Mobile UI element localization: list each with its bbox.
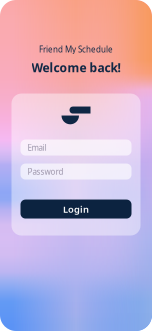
button[interactable]: Email — [20, 140, 131, 156]
staticText: Email — [27, 142, 46, 153]
staticText: Friend My Schedule — [39, 44, 113, 55]
staticText: Login — [63, 203, 89, 215]
staticText: Password — [27, 166, 63, 177]
staticText: Welcome back! — [31, 60, 120, 75]
button[interactable]: Login — [20, 200, 131, 219]
button[interactable]: Password — [20, 164, 131, 180]
